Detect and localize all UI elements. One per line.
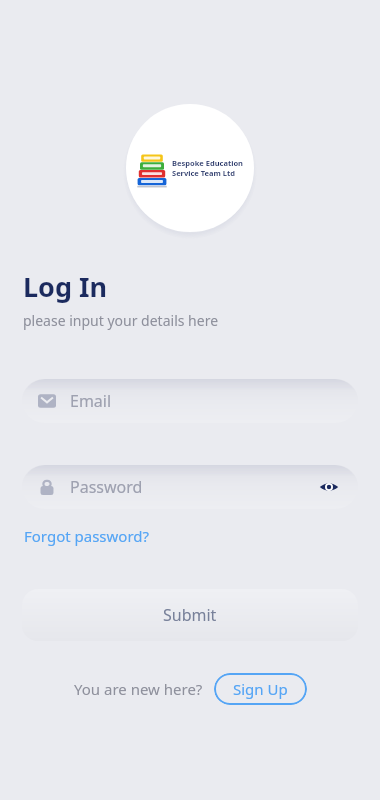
staticText: Bespoke Education — [172, 158, 243, 168]
staticText: Forgot password? — [24, 526, 150, 546]
button[interactable]: Submit — [22, 589, 358, 641]
staticText: Password — [70, 476, 143, 498]
button[interactable]: Show password — [316, 474, 342, 500]
staticText: please input your details here — [23, 311, 219, 330]
staticText: Email — [70, 390, 112, 412]
button[interactable]: Sign Up — [214, 673, 307, 705]
staticText: Service Team Ltd — [172, 168, 236, 178]
staticText: You are new here? — [74, 679, 203, 699]
button[interactable]: Email — [22, 379, 358, 423]
staticText: Submit — [163, 604, 217, 626]
button[interactable]: Forgot password? — [22, 524, 152, 548]
staticText: Log In — [23, 268, 108, 305]
button[interactable]: Password — [22, 465, 358, 509]
staticText: Sign Up — [233, 679, 288, 699]
